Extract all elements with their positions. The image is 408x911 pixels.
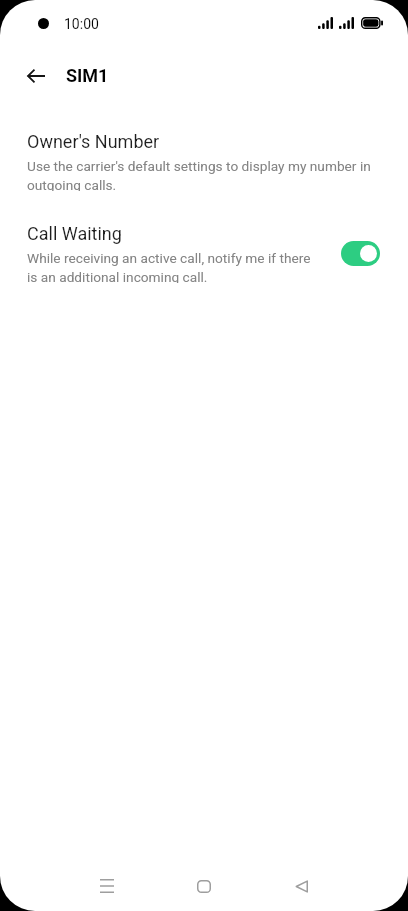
button[interactable]: Call Waiting <box>0 215 408 283</box>
button[interactable]: Recents <box>83 862 131 910</box>
staticText: Owner's Number <box>27 131 160 152</box>
button[interactable]: Home <box>180 862 228 910</box>
button[interactable]: Back <box>17 57 55 95</box>
staticText: While receiving an active call, notify m… <box>27 250 319 283</box>
staticText: Call Waiting <box>27 223 122 244</box>
button[interactable]: Back <box>277 862 325 910</box>
staticText: Use the carrier's default settings to di… <box>27 158 377 191</box>
button[interactable]: Owner's Number <box>0 123 408 191</box>
staticText: 10:00 <box>64 16 99 32</box>
button[interactable]: Call waiting toggle <box>341 241 380 266</box>
staticText: SIM1 <box>66 65 109 86</box>
